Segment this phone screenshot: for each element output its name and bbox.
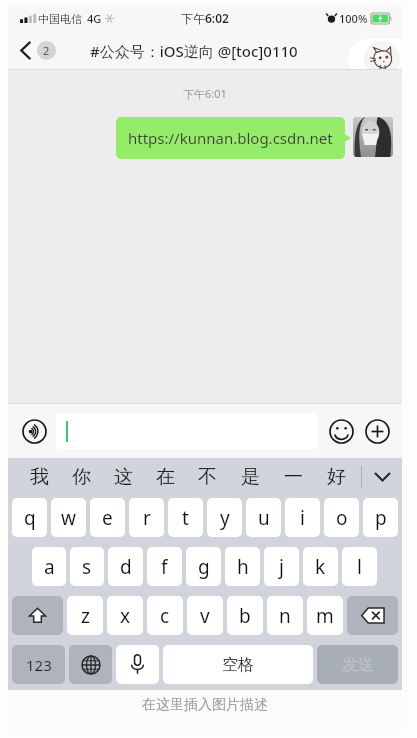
button[interactable]: f — [147, 547, 182, 586]
button[interactable]: g — [186, 547, 221, 586]
staticText: c — [160, 603, 170, 629]
button[interactable]: o — [324, 498, 359, 537]
button[interactable]: v — [187, 596, 223, 635]
button[interactable]: 一 — [272, 458, 315, 495]
button[interactable]: Switch language — [69, 645, 112, 684]
button[interactable]: Sender avatar — [353, 117, 393, 157]
button[interactable]: c — [147, 596, 183, 635]
staticText: i — [300, 505, 305, 531]
staticText: z — [81, 603, 90, 629]
staticText: 中国电信 — [38, 12, 82, 26]
button[interactable]: u — [246, 498, 281, 537]
button[interactable]: z — [67, 596, 103, 635]
button[interactable]: y — [207, 498, 242, 537]
staticText: n — [279, 603, 291, 629]
button[interactable]: 这 — [102, 458, 144, 495]
staticText: b — [239, 603, 251, 629]
button[interactable]: h — [225, 547, 260, 586]
staticText: 100% — [339, 11, 368, 26]
button[interactable]: p — [363, 498, 398, 537]
staticText: v — [200, 603, 210, 629]
staticText: 空格 — [222, 655, 254, 675]
staticText: e — [102, 505, 113, 531]
button[interactable]: 123 — [12, 645, 65, 684]
button[interactable]: a — [32, 547, 66, 586]
staticText: 你 — [72, 465, 91, 489]
staticText: 一 — [284, 465, 303, 489]
staticText: a — [44, 554, 55, 580]
button[interactable]: Collapse suggestions — [362, 458, 402, 495]
button[interactable]: n — [267, 596, 303, 635]
staticText: t — [182, 505, 189, 531]
button[interactable]: Profile avatar — [348, 39, 406, 78]
staticText: 我 — [30, 465, 49, 489]
button[interactable]: d — [108, 547, 143, 586]
staticText: s — [82, 554, 92, 580]
staticText: m — [316, 603, 334, 629]
button[interactable]: l — [342, 547, 377, 586]
staticText: w — [61, 505, 76, 531]
staticText: 不 — [198, 465, 217, 489]
staticText: f — [161, 554, 168, 580]
staticText: k — [315, 554, 326, 580]
button[interactable]: 我 — [18, 458, 60, 495]
button[interactable]: 空格 — [163, 645, 313, 684]
button[interactable]: Emoji — [325, 415, 357, 447]
staticText: 是 — [241, 465, 260, 489]
staticText: q — [24, 505, 36, 531]
button[interactable]: r — [129, 498, 164, 537]
button[interactable]: https://kunnan.blog.csdn.net — [116, 117, 345, 159]
button[interactable]: i — [285, 498, 320, 537]
button[interactable]: 发送 — [317, 645, 398, 684]
button[interactable]: m — [307, 596, 343, 635]
staticText: r — [143, 505, 151, 531]
button[interactable]: 是 — [229, 458, 272, 495]
staticText: h — [237, 554, 249, 580]
staticText: 下午6:02 — [181, 10, 229, 26]
button[interactable]: e — [90, 498, 125, 537]
staticText: o — [336, 505, 348, 531]
staticText: g — [198, 554, 210, 580]
staticText: 在这里插入图片描述 — [142, 696, 268, 714]
staticText: 4G — [87, 11, 102, 26]
button[interactable]: Dictation — [116, 645, 159, 684]
staticText: 这 — [114, 465, 133, 489]
staticText: x — [120, 603, 131, 629]
button[interactable]: 不 — [186, 458, 229, 495]
staticText: l — [357, 554, 362, 580]
button[interactable]: Delete — [347, 596, 398, 635]
staticText: u — [258, 505, 270, 531]
staticText: https://kunnan.blog.csdn.net — [128, 128, 333, 148]
button[interactable]: 你 — [60, 458, 102, 495]
button[interactable]: Voice input — [17, 414, 51, 448]
button[interactable]: k — [303, 547, 338, 586]
staticText: y — [220, 505, 230, 531]
button[interactable]: 好 — [315, 458, 358, 495]
staticText: d — [120, 554, 132, 580]
button[interactable]: w — [51, 498, 86, 537]
button[interactable]: x — [107, 596, 143, 635]
button[interactable] — [56, 413, 318, 449]
staticText: #公众号：iOS逆向 @[toc]0110 — [90, 41, 298, 61]
staticText: 在 — [156, 465, 175, 489]
button[interactable]: s — [70, 547, 104, 586]
button[interactable]: j — [264, 547, 299, 586]
button[interactable]: Shift — [12, 596, 63, 635]
button[interactable]: q — [12, 498, 47, 537]
staticText: 好 — [327, 465, 346, 489]
button[interactable]: b — [227, 596, 263, 635]
button[interactable]: Back, 2 unread — [16, 37, 60, 64]
staticText: 下午6:01 — [8, 86, 402, 101]
staticText: j — [279, 554, 284, 580]
staticText: p — [375, 505, 387, 531]
staticText: 发送 — [342, 655, 374, 675]
staticText: 123 — [26, 655, 52, 675]
button[interactable]: 在 — [144, 458, 186, 495]
button[interactable]: t — [168, 498, 203, 537]
staticText: 2 — [43, 43, 50, 58]
button[interactable]: More — [361, 415, 393, 447]
